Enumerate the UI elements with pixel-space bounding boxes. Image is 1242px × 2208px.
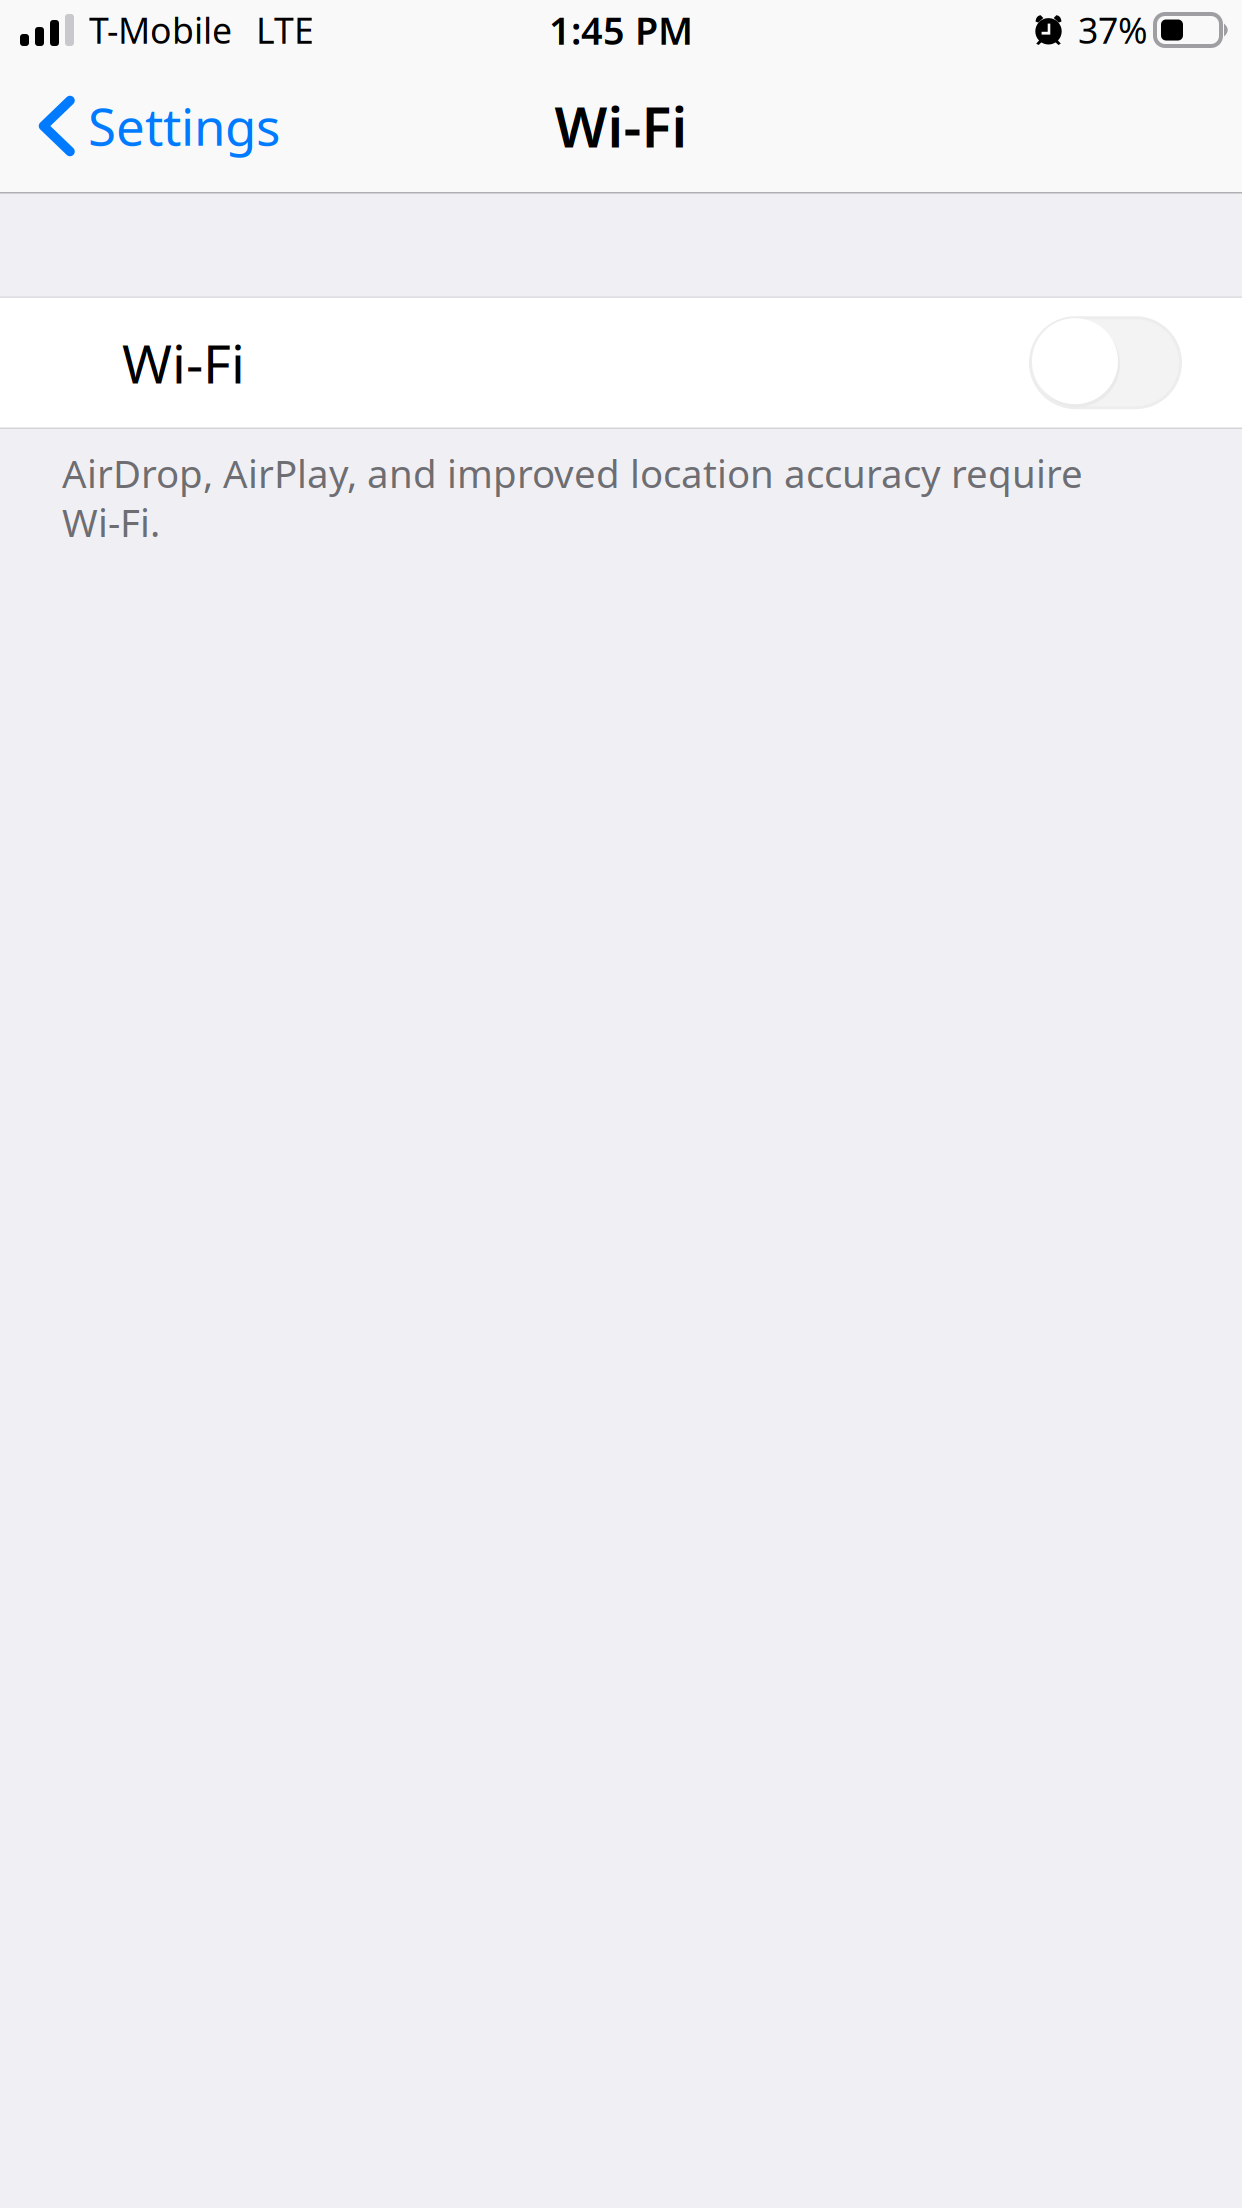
staticText: 37%: [1078, 6, 1148, 54]
button[interactable]: Back to Settings: [0, 60, 300, 192]
staticText: Wi-Fi: [122, 327, 245, 398]
staticText: LTE: [256, 6, 314, 54]
staticText: Settings: [88, 92, 280, 160]
staticText: Wi-Fi: [554, 89, 687, 163]
staticText: T-Mobile: [89, 6, 232, 54]
button[interactable]: Wi-Fi: [0, 298, 1242, 428]
button[interactable]: Wi-Fi: [1029, 316, 1182, 409]
staticText: AirDrop, AirPlay, and improved location …: [62, 448, 1083, 548]
staticText: 1:45 PM: [549, 5, 693, 55]
